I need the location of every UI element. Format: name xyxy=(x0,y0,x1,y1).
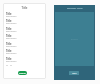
staticText: Title xyxy=(6,12,12,15)
staticText: description xyxy=(6,45,17,48)
staticText: Title xyxy=(6,34,12,37)
staticText: description xyxy=(6,22,17,25)
button[interactable]: Title xyxy=(3,26,46,34)
button[interactable]: SECTION TITLE xyxy=(54,5,95,12)
staticText: Title xyxy=(6,57,12,60)
button[interactable]: Title xyxy=(3,41,46,49)
staticText: Title xyxy=(3,6,46,10)
staticText: Title xyxy=(6,49,12,52)
staticText: Title xyxy=(6,19,12,22)
staticText: description xyxy=(6,37,17,40)
staticText: Next xyxy=(72,72,77,75)
staticText: description xyxy=(6,52,17,55)
staticText: Title xyxy=(6,27,12,30)
button[interactable]: Title xyxy=(3,33,46,41)
staticText: Empty xyxy=(71,38,78,41)
staticText: SECTION TITLE xyxy=(67,7,83,10)
button[interactable]: Title xyxy=(3,56,46,64)
button[interactable]: Title xyxy=(3,11,46,19)
button[interactable]: Next xyxy=(69,71,79,75)
staticText: Title xyxy=(6,42,12,45)
staticText: description xyxy=(6,30,17,33)
staticText: description xyxy=(6,15,17,18)
button[interactable]: Title xyxy=(3,18,46,26)
button[interactable]: Title xyxy=(3,48,46,56)
staticText: Submit xyxy=(19,72,26,75)
button[interactable]: Submit xyxy=(18,71,27,75)
staticText: description xyxy=(6,60,17,63)
